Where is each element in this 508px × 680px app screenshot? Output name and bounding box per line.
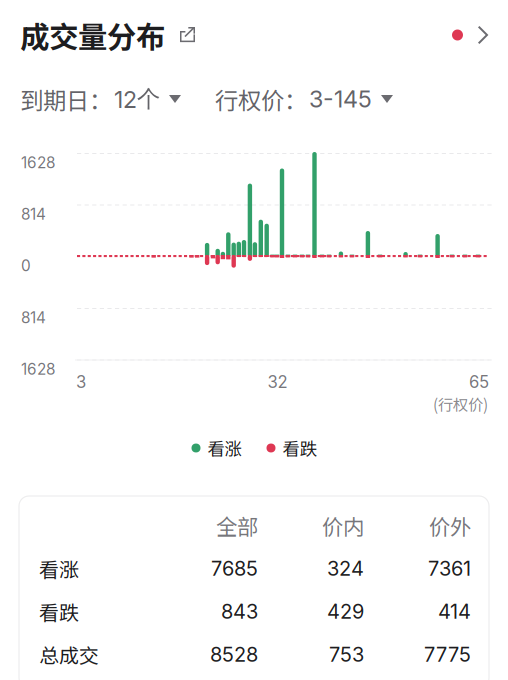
staticText: 814 — [21, 205, 46, 224]
staticText: 3 — [76, 372, 86, 392]
staticText: 753 — [329, 642, 364, 667]
staticText: 看涨 — [39, 554, 79, 583]
button[interactable]: 更多 — [452, 18, 489, 52]
staticText: 0 — [21, 256, 31, 275]
staticText: 价内 — [322, 510, 364, 541]
staticText: 324 — [327, 556, 364, 581]
staticText: (行权价) — [433, 393, 488, 415]
staticText: 843 — [221, 599, 258, 624]
staticText: 价外 — [429, 510, 471, 541]
staticText: 7775 — [424, 642, 471, 667]
staticText: 8528 — [210, 642, 258, 667]
button[interactable]: 行权价 — [215, 82, 393, 116]
staticText: 看跌 — [39, 597, 79, 626]
staticText: 814 — [21, 308, 46, 327]
staticText: ： — [89, 82, 112, 116]
staticText: 1628 — [21, 360, 55, 379]
button[interactable]: 分享 — [175, 22, 201, 48]
staticText: ： — [284, 82, 307, 116]
staticText: 7361 — [428, 556, 471, 581]
staticText: 到期日 — [20, 82, 89, 116]
staticText: 32 — [267, 372, 287, 392]
staticText: 行权价 — [215, 82, 284, 116]
button[interactable]: 到期日 — [20, 82, 181, 116]
staticText: 看跌 — [282, 435, 316, 461]
staticText: 3-145 — [309, 85, 372, 113]
staticText: 414 — [438, 599, 471, 624]
staticText: 全部 — [216, 510, 258, 541]
staticText: 1628 — [21, 153, 55, 172]
staticText: 65 — [469, 372, 489, 392]
staticText: 看涨 — [207, 435, 241, 461]
staticText: 12个 — [114, 84, 160, 114]
staticText: 429 — [327, 599, 364, 624]
staticText: 7685 — [211, 556, 258, 581]
staticText: 成交量分布 — [20, 14, 165, 56]
staticText: 总成交 — [39, 640, 99, 669]
